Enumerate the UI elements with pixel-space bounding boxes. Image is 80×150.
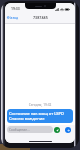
staticText: 7387445 bbox=[33, 15, 48, 20]
staticText: Состояние как мощ от LSPD Спасем вождени… bbox=[9, 111, 64, 121]
button[interactable]: Состояние как мощ от LSPD Спасем вождени… bbox=[7, 109, 73, 123]
button[interactable]: Отправить в WhatsApp bbox=[54, 127, 60, 133]
button[interactable]: Сообщение... bbox=[7, 126, 53, 133]
staticText: Сообщение... bbox=[9, 128, 30, 132]
staticText: Сегодня, 19:32 bbox=[5, 103, 75, 107]
button[interactable]: Отправить bbox=[65, 127, 71, 133]
staticText: 19:33 bbox=[11, 6, 20, 11]
button[interactable]: Назад bbox=[5, 13, 21, 22]
staticText: Назад bbox=[8, 15, 19, 20]
